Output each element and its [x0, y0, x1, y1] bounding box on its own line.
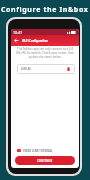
staticText: VIDEO LINK TUTORIAL [23, 149, 53, 152]
button[interactable]: VIDEO LINK TUTORIAL [17, 149, 53, 152]
staticText: CONTINUE [37, 159, 53, 163]
staticText: Configure the In&box Wi-Fi [1, 5, 90, 15]
staticText: 10:41 [13, 30, 22, 35]
button[interactable]: Back [13, 37, 20, 44]
button[interactable]: BUREAU [17, 64, 75, 74]
staticText: The In&box app can only connect to a 2.4… [14, 47, 76, 59]
button[interactable]: CONTINUE [15, 156, 75, 165]
staticText: BUREAU [21, 67, 32, 71]
staticText: Wi-Fi Configuration [22, 39, 48, 43]
